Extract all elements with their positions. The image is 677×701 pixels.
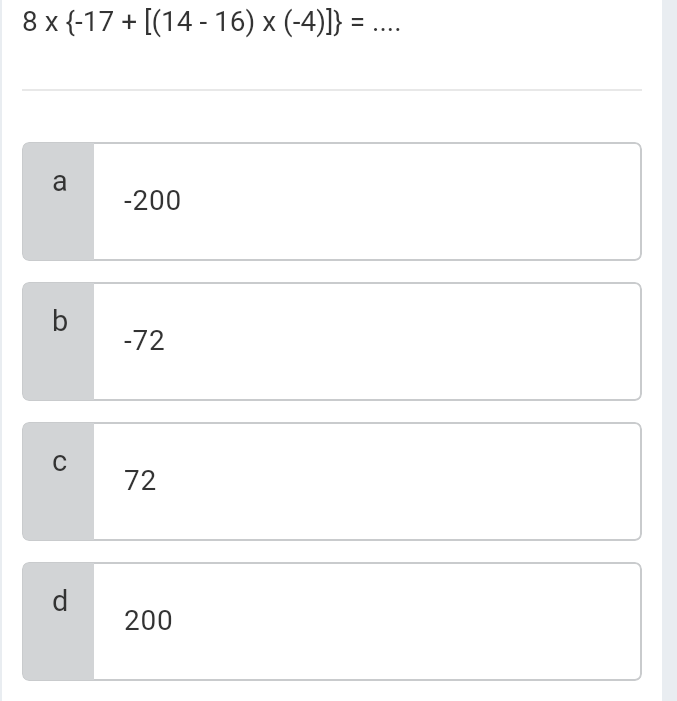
button[interactable]: c	[22, 422, 642, 541]
staticText: 72	[124, 464, 158, 497]
staticText: d	[52, 584, 69, 618]
staticText: 8 x {-17 + [(14 - 16) x (-4)]} = ....	[22, 5, 402, 38]
staticText: 200	[124, 604, 174, 637]
staticText: a	[52, 164, 68, 198]
button[interactable]: d	[22, 562, 642, 681]
staticText: b	[52, 304, 69, 338]
button[interactable]: a	[22, 142, 642, 261]
staticText: -72	[124, 324, 166, 357]
staticText: -200	[124, 184, 183, 217]
button[interactable]: b	[22, 282, 642, 401]
staticText: c	[52, 444, 68, 478]
